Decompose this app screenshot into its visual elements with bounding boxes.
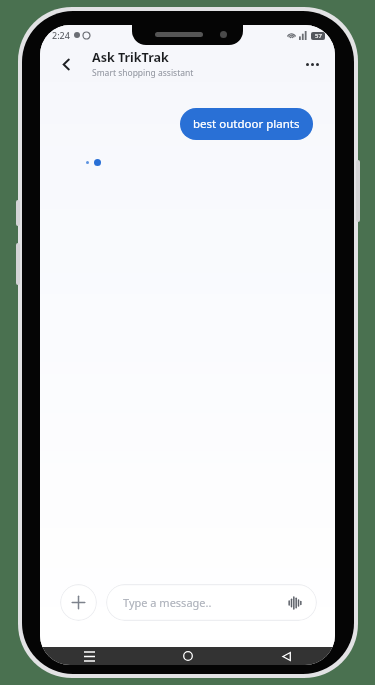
button[interactable]: Recent apps xyxy=(40,647,139,665)
button[interactable]: Add attachment xyxy=(60,584,97,621)
staticText: Ask TrikTrak xyxy=(92,49,169,66)
staticText: best outdoor plants xyxy=(193,116,300,132)
button[interactable]: Home xyxy=(139,647,237,665)
button[interactable]: Voice input xyxy=(285,593,305,613)
button[interactable]: Back xyxy=(53,51,79,77)
staticText: Type a message.. xyxy=(123,595,212,610)
staticText: 2:24 xyxy=(52,29,70,41)
button[interactable]: best outdoor plants xyxy=(180,108,313,140)
button[interactable]: Type a message.. xyxy=(106,584,317,621)
staticText: 57 xyxy=(315,32,322,40)
button[interactable]: Back xyxy=(237,647,335,665)
button[interactable]: More options xyxy=(299,51,325,77)
staticText: Smart shopping assistant xyxy=(92,67,194,79)
